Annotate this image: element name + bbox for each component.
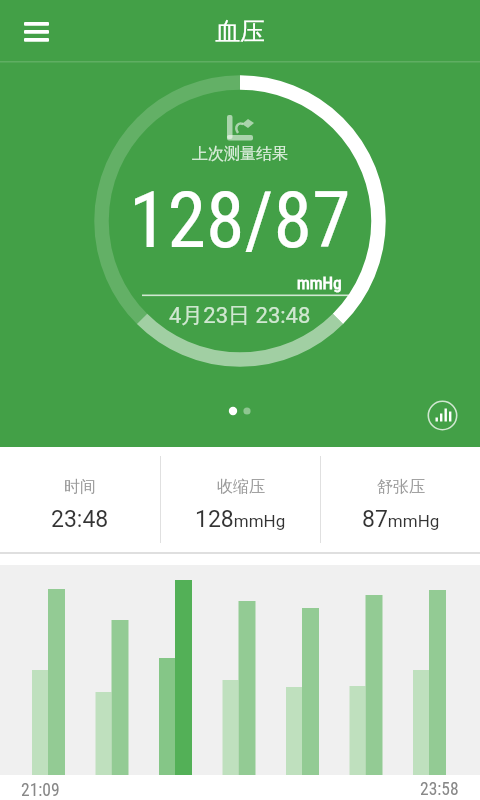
button[interactable] xyxy=(16,16,56,48)
staticText: 23:48 xyxy=(51,506,109,533)
button[interactable]: 舒张压 xyxy=(321,447,480,552)
staticText: 87mmHg xyxy=(362,506,440,533)
staticText: mmHg xyxy=(297,273,342,293)
button[interactable] xyxy=(427,400,458,431)
staticText: 血压 xyxy=(215,16,265,47)
staticText: 舒张压 xyxy=(377,477,425,497)
staticText: 23:58 xyxy=(420,779,459,800)
staticText: 上次测量结果 xyxy=(192,144,288,164)
staticText: 4月23日 23:48 xyxy=(169,302,311,330)
staticText: 128/87 xyxy=(129,175,351,266)
staticText: 128mmHg xyxy=(195,506,286,533)
staticText: 21:09 xyxy=(21,780,60,800)
staticText: 收缩压 xyxy=(217,477,265,497)
button[interactable]: 收缩压 xyxy=(161,447,320,552)
staticText: 时间 xyxy=(64,477,96,497)
button[interactable]: 时间 xyxy=(0,447,160,552)
